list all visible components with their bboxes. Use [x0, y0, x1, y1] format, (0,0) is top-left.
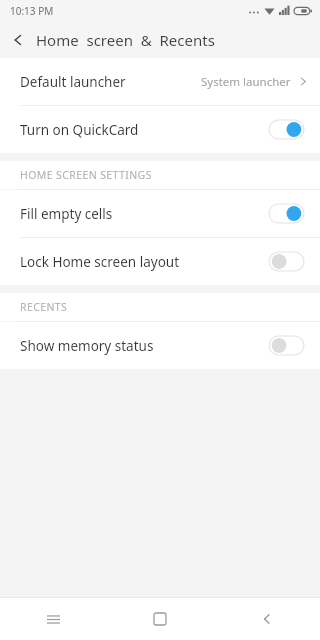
button[interactable]: Lock Home screen layout — [0, 238, 320, 285]
button[interactable]: Fill empty cells — [0, 190, 320, 237]
staticText: Show memory status — [20, 337, 269, 355]
staticText: Lock Home screen layout — [20, 253, 269, 271]
button[interactable]: Home — [106, 598, 213, 640]
button[interactable]: Show memory status — [0, 322, 320, 369]
staticText: 10:13 PM — [10, 4, 54, 18]
staticText: Fill empty cells — [20, 205, 269, 223]
button[interactable]: Turn on QuickCard — [0, 106, 320, 153]
button[interactable]: Menu — [0, 598, 106, 640]
staticText: Turn on QuickCard — [20, 121, 269, 139]
staticText: RECENTS — [20, 300, 68, 314]
button[interactable]: Back — [0, 22, 36, 58]
button[interactable]: Back — [213, 598, 320, 640]
staticText: System launcher — [201, 74, 291, 90]
staticText: Home screen & Recents — [36, 30, 215, 50]
staticText: Default launcher — [20, 73, 201, 91]
button[interactable]: Default launcher — [0, 58, 320, 105]
staticText: HOME SCREEN SETTINGS — [20, 168, 152, 182]
